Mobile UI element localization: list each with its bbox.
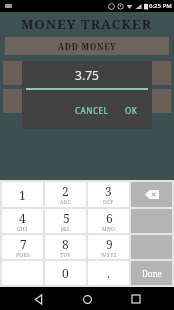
staticText: OK bbox=[125, 105, 138, 116]
button[interactable]: Back bbox=[27, 288, 49, 310]
button[interactable]: 3 bbox=[88, 182, 129, 207]
staticText: MONEY TRACKER bbox=[21, 15, 153, 33]
staticText: TUV bbox=[60, 252, 71, 259]
staticText: 6:25 PM bbox=[149, 2, 172, 10]
button[interactable]: Done bbox=[131, 261, 172, 285]
button[interactable]: 1 bbox=[2, 182, 43, 207]
button[interactable]: 8 bbox=[45, 235, 86, 259]
staticText: PQRS bbox=[16, 252, 30, 259]
button[interactable]: . bbox=[88, 261, 129, 285]
button[interactable]: 9 bbox=[88, 235, 129, 259]
button[interactable]: Backspace bbox=[131, 182, 172, 207]
staticText: 1 bbox=[19, 187, 26, 203]
staticText: 0 bbox=[62, 265, 69, 281]
staticText: 9 bbox=[106, 236, 113, 252]
button[interactable]: CANCEL bbox=[69, 101, 115, 120]
staticText: 8 bbox=[62, 236, 69, 252]
staticText: ABC bbox=[60, 199, 71, 206]
staticText: Done bbox=[142, 268, 162, 279]
staticText: 3 bbox=[105, 183, 112, 199]
staticText: 4 bbox=[19, 210, 26, 226]
staticText: MNO bbox=[102, 226, 116, 233]
button[interactable]: ADD MONEY bbox=[5, 37, 169, 55]
button[interactable] bbox=[3, 89, 171, 113]
staticText: GHI bbox=[17, 226, 28, 233]
staticText: WXYZ bbox=[101, 252, 117, 259]
button[interactable]: 5 bbox=[45, 209, 86, 233]
staticText: CANCEL bbox=[75, 105, 109, 116]
staticText: ADD MONEY bbox=[58, 41, 117, 52]
button[interactable]: 7 bbox=[2, 235, 43, 259]
button[interactable]: Home bbox=[76, 288, 98, 310]
staticText: 5 bbox=[63, 210, 70, 226]
button[interactable]: Recent apps bbox=[125, 288, 147, 310]
staticText: JKL bbox=[61, 226, 71, 233]
staticText: DEF bbox=[103, 199, 114, 206]
button[interactable]: 6 bbox=[88, 209, 129, 233]
button[interactable]: 4 bbox=[2, 209, 43, 233]
staticText: 2 bbox=[62, 183, 69, 199]
button[interactable]: 2 bbox=[45, 182, 86, 207]
button[interactable]: 0 bbox=[45, 261, 86, 285]
staticText: 3.75 bbox=[75, 67, 99, 83]
button[interactable]: OK bbox=[119, 101, 144, 120]
staticText: 6 bbox=[106, 210, 113, 226]
button[interactable] bbox=[3, 61, 171, 85]
staticText: 7 bbox=[20, 236, 27, 252]
staticText: . bbox=[107, 265, 111, 281]
